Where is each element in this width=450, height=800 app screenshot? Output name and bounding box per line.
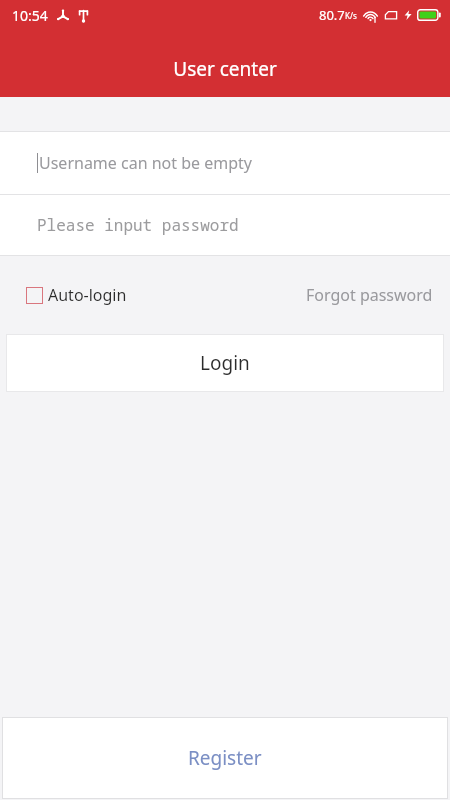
staticText: Please input password: [37, 214, 239, 236]
button[interactable]: Register: [2, 717, 448, 799]
button[interactable]: Forgot password: [305, 280, 434, 310]
button[interactable]: Username can not be empty: [0, 132, 450, 194]
staticText: Auto-login: [48, 284, 127, 306]
staticText: Login: [200, 350, 250, 376]
button[interactable]: Please input password: [0, 195, 450, 255]
button[interactable]: Auto-login: [26, 284, 127, 306]
staticText: Username can not be empty: [39, 152, 252, 174]
staticText: User center: [173, 56, 277, 82]
staticText: 80.7: [319, 6, 345, 24]
staticText: Register: [188, 745, 262, 771]
staticText: 10:54: [12, 6, 48, 25]
staticText: Forgot password: [306, 284, 433, 306]
staticText: K/s: [345, 10, 357, 21]
button[interactable]: Login: [6, 334, 444, 392]
